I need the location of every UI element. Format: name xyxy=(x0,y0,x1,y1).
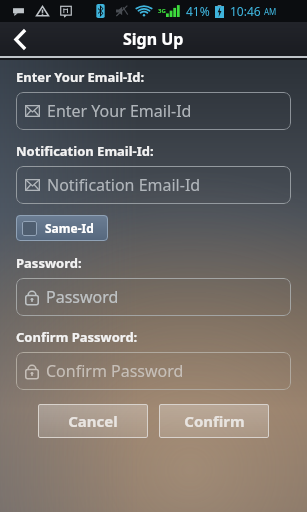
button[interactable]: Notification Email-Id xyxy=(16,166,291,204)
staticText: Cancel xyxy=(68,411,118,431)
button[interactable]: Confirm Password xyxy=(16,352,291,390)
staticText: Same-Id xyxy=(45,220,94,236)
staticText: Enter Your Email-Id: xyxy=(16,68,145,86)
staticText: Notification Email-Id: xyxy=(16,142,154,160)
staticText: Notification Email-Id xyxy=(47,174,201,196)
staticText: 41% xyxy=(186,3,210,19)
staticText: Confirm Password: xyxy=(16,328,138,346)
staticText: 3G xyxy=(158,7,166,15)
staticText: Confirm xyxy=(184,411,245,431)
staticText: Password xyxy=(46,286,119,308)
staticText: 10:46 xyxy=(230,3,261,19)
button[interactable]: Cancel xyxy=(38,404,148,438)
staticText: Password: xyxy=(16,254,82,272)
staticText: Confirm Password xyxy=(46,360,184,382)
button[interactable]: Same-Id xyxy=(16,215,108,241)
staticText: Enter Your Email-Id xyxy=(47,100,192,122)
button[interactable]: Password xyxy=(16,278,291,316)
staticText: Sign Up xyxy=(123,28,184,50)
button[interactable]: Enter Your Email-Id xyxy=(16,92,291,130)
button[interactable]: Back xyxy=(0,22,40,56)
button[interactable]: Confirm xyxy=(159,404,269,438)
staticText: AM xyxy=(264,6,277,17)
